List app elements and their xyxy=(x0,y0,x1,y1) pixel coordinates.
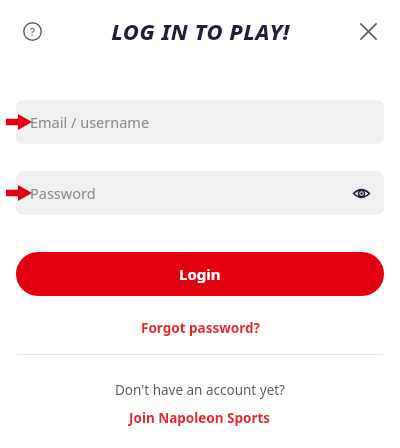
button[interactable]: Login xyxy=(16,252,384,296)
staticText: Login xyxy=(179,264,221,284)
staticText: Join Napoleon Sports xyxy=(129,409,271,427)
staticText: Forgot password? xyxy=(141,319,260,337)
staticText: Password xyxy=(30,183,96,203)
staticText: Don't have an account yet? xyxy=(115,381,285,399)
button[interactable]: Forgot password? xyxy=(133,315,268,341)
staticText: ? xyxy=(30,24,35,39)
button[interactable]: Help xyxy=(16,15,48,47)
button[interactable]: Password xyxy=(16,171,384,215)
staticText: Email / username xyxy=(30,112,150,132)
button[interactable]: Show password xyxy=(346,178,376,208)
button[interactable]: Close xyxy=(352,15,384,47)
button[interactable]: Join Napoleon Sports xyxy=(121,407,279,429)
button[interactable]: Email / username xyxy=(16,100,384,144)
staticText: LOG IN TO PLAY! xyxy=(111,16,290,46)
